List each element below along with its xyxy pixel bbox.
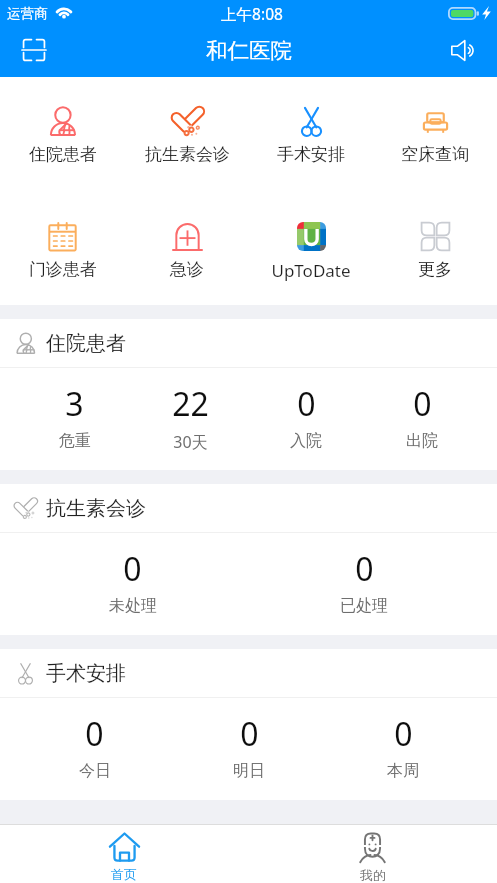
- staticText: 今日: [79, 761, 111, 781]
- staticText: 上午8:08: [221, 3, 283, 24]
- staticText: 首页: [111, 866, 137, 882]
- staticText: 0: [297, 382, 316, 426]
- staticText: 0: [355, 547, 374, 591]
- staticText: 急诊: [170, 259, 204, 280]
- button[interactable]: 0: [248, 368, 364, 470]
- staticText: 手术安排: [46, 661, 126, 686]
- button[interactable]: 0: [172, 698, 326, 800]
- button[interactable]: 住院患者: [0, 107, 125, 165]
- staticText: 明日: [233, 761, 265, 781]
- staticText: 已处理: [340, 596, 388, 616]
- staticText: 住院患者: [46, 331, 126, 356]
- button[interactable]: 0: [248, 533, 480, 635]
- button[interactable]: 门诊患者: [0, 222, 125, 280]
- staticText: 抗生素会诊: [46, 496, 146, 521]
- button[interactable]: 手术安排: [0, 649, 497, 697]
- staticText: 0: [240, 712, 259, 756]
- staticText: 0: [413, 382, 432, 426]
- button[interactable]: 22: [132, 368, 248, 470]
- staticText: 我的: [360, 867, 386, 883]
- button[interactable]: 急诊: [125, 222, 249, 280]
- staticText: 住院患者: [29, 144, 97, 165]
- button[interactable]: 0: [364, 368, 480, 470]
- staticText: 30天: [173, 431, 208, 453]
- button[interactable]: UpToDate: [249, 222, 373, 282]
- staticText: 0: [85, 712, 104, 756]
- staticText: 未处理: [109, 596, 157, 616]
- button[interactable]: 我的: [248, 825, 497, 883]
- staticText: 和仁医院: [206, 37, 292, 64]
- staticText: 入院: [290, 431, 322, 451]
- button[interactable]: 0: [17, 698, 172, 800]
- staticText: 3: [65, 382, 84, 426]
- staticText: 手术安排: [277, 144, 345, 165]
- button[interactable]: 0: [17, 533, 248, 635]
- staticText: 门诊患者: [29, 259, 97, 280]
- button[interactable]: 3: [17, 368, 132, 470]
- staticText: 危重: [59, 431, 91, 451]
- button[interactable]: 抗生素会诊: [0, 484, 497, 532]
- button[interactable]: 0: [326, 698, 480, 800]
- staticText: 0: [123, 547, 142, 591]
- staticText: 空床查询: [401, 144, 469, 165]
- button[interactable]: 手术安排: [249, 107, 373, 165]
- button[interactable]: Scan QR code: [12, 28, 56, 72]
- button[interactable]: 更多: [373, 222, 497, 280]
- staticText: 本周: [387, 761, 419, 781]
- button[interactable]: 空床查询: [373, 107, 497, 165]
- button[interactable]: 抗生素会诊: [125, 107, 249, 165]
- button[interactable]: Sound notifications: [441, 28, 485, 72]
- staticText: 抗生素会诊: [145, 144, 230, 165]
- button[interactable]: 住院患者: [0, 319, 497, 367]
- staticText: 更多: [418, 259, 452, 280]
- staticText: 22: [172, 382, 209, 426]
- staticText: 0: [394, 712, 413, 756]
- staticText: 运营商: [7, 5, 48, 22]
- button[interactable]: 首页: [0, 825, 248, 883]
- staticText: UpToDate: [271, 259, 351, 282]
- staticText: 出院: [406, 431, 438, 451]
